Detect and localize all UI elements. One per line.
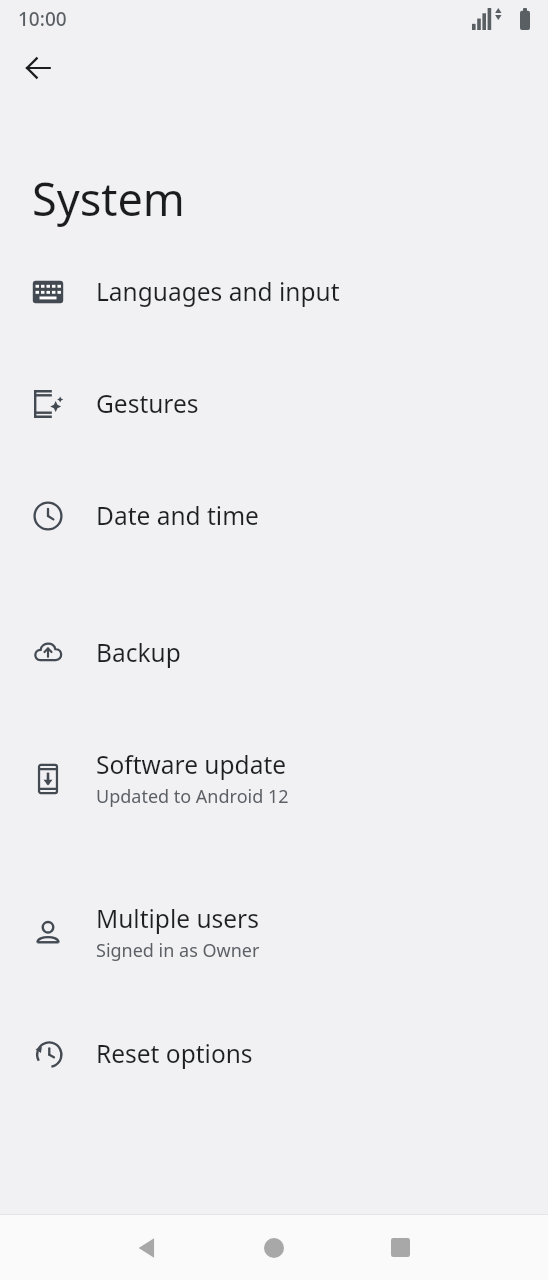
staticText: Backup [96,636,181,669]
staticText: Gestures [96,387,199,420]
staticText: Software update [96,748,287,781]
button[interactable]: Date and time [0,499,548,532]
button[interactable]: Reset options [0,1037,548,1070]
button[interactable]: Back [84,1215,210,1280]
staticText: Date and time [96,499,259,532]
staticText: Multiple users [96,902,259,935]
staticText: 10:00 [18,6,67,32]
staticText: Languages and input [96,275,340,308]
button[interactable]: Backup [0,636,548,669]
button[interactable]: Recent apps [337,1215,464,1280]
staticText: Signed in as Owner [96,938,260,963]
button[interactable]: Languages and input [0,275,548,308]
button[interactable]: Multiple users [0,902,548,963]
staticText: Reset options [96,1037,253,1070]
button[interactable]: Home [210,1215,337,1280]
staticText: System [32,168,185,229]
staticText: Updated to Android 12 [96,784,289,809]
button[interactable]: Software update [0,748,548,809]
button[interactable]: Back [14,44,62,92]
button[interactable]: Gestures [0,387,548,420]
